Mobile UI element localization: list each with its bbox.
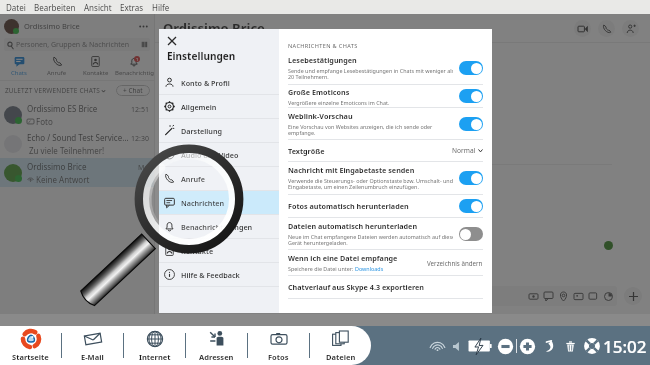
- button[interactable]: Adressen: [186, 326, 247, 365]
- button[interactable]: Close settings: [165, 34, 178, 47]
- button[interactable]: Internet: [124, 326, 185, 365]
- button[interactable]: Ansicht: [80, 1, 116, 14]
- staticText: Lesebestätigungen: [288, 55, 357, 65]
- button[interactable]: More options: [137, 20, 149, 32]
- button[interactable]: Add people: [622, 20, 639, 37]
- button[interactable]: Textgröße: [288, 140, 483, 161]
- button[interactable]: Große Emoticons: [288, 85, 483, 107]
- button[interactable]: Extras: [116, 1, 148, 14]
- staticText: Nachricht mit Eingabetaste senden: [288, 165, 415, 175]
- button[interactable]: Help: [583, 337, 601, 355]
- button[interactable]: Chatverlauf aus Skype 4.3 exportieren: [288, 276, 483, 298]
- button[interactable]: Kontakte: [164, 239, 279, 262]
- staticText: Chats: [11, 69, 27, 77]
- staticText: Zu viele Teilnehmer!: [29, 145, 105, 156]
- staticText: Keine Antwort: [36, 174, 90, 185]
- button[interactable]: Off: [459, 227, 483, 241]
- staticText: Konto & Profil: [181, 78, 230, 88]
- staticText: Adressen: [199, 352, 234, 362]
- button[interactable]: Hilfe: [148, 1, 174, 14]
- staticText: Speichere die Datei unter:: [288, 265, 355, 272]
- staticText: Datei: [6, 2, 26, 13]
- button[interactable]: Startseite: [0, 326, 61, 365]
- staticText: Mo: [138, 163, 149, 173]
- staticText: 12:51: [131, 105, 149, 115]
- button[interactable]: Wenn ich eine Datei empfange: [288, 250, 483, 275]
- button[interactable]: On: [459, 61, 483, 75]
- button[interactable]: On: [459, 117, 483, 131]
- button[interactable]: Zoom out: [497, 338, 514, 355]
- button[interactable]: Datei: [2, 1, 30, 14]
- button[interactable]: Nachricht mit Eingabetaste senden: [288, 162, 483, 194]
- staticText: Allgemein: [181, 102, 217, 112]
- button[interactable]: Ordissimo ES Brice: [4, 100, 149, 129]
- staticText: Darstellung: [181, 126, 222, 136]
- other: Volume: [451, 341, 462, 352]
- staticText: Große Emoticons: [288, 87, 350, 97]
- button[interactable]: Lesebestätigungen: [288, 51, 483, 84]
- button[interactable]: Trash: [563, 339, 578, 354]
- button[interactable]: On: [459, 89, 483, 103]
- staticText: Audio und Video: [181, 150, 239, 160]
- staticText: 1: [136, 57, 139, 62]
- button[interactable]: Benachrichtigungen: [164, 215, 279, 238]
- staticText: Sende und empfange Lesebestätigungen in …: [288, 67, 453, 81]
- button[interactable]: Anrufe: [38, 53, 76, 80]
- staticText: ZULETZT VERWENDETE CHATS: [5, 86, 100, 95]
- staticText: Anrufe: [181, 174, 205, 184]
- staticText: Internet: [139, 352, 171, 362]
- staticText: 12:30: [131, 134, 149, 144]
- button[interactable]: On: [459, 199, 483, 213]
- staticText: Kontakte: [181, 246, 214, 256]
- button[interactable]: 1: [115, 53, 154, 80]
- button[interactable]: Zoom in: [519, 338, 536, 355]
- button[interactable]: + Chat: [116, 85, 150, 96]
- staticText: Fotos automatisch herunterladen: [288, 201, 409, 211]
- staticText: Downloads: [355, 265, 384, 272]
- staticText: Weblink-Vorschau: [288, 111, 353, 121]
- staticText: Startseite: [12, 352, 49, 362]
- button[interactable]: Darstellung: [164, 119, 279, 142]
- staticText: Hilfe: [152, 2, 170, 13]
- button[interactable]: Ordissimo Brice: [4, 14, 149, 38]
- staticText: Hilfe & Feedback: [181, 270, 240, 280]
- staticText: Benachrichtig: [115, 69, 154, 77]
- button[interactable]: Anrufe: [164, 167, 279, 190]
- button[interactable]: Allgemein: [164, 95, 279, 118]
- button[interactable]: Kontakte: [76, 53, 115, 80]
- staticText: Kontakte: [83, 69, 109, 77]
- staticText: Verzeichnis ändern: [427, 259, 483, 267]
- other: Battery: [468, 333, 494, 359]
- button[interactable]: Hilfe & Feedback: [164, 263, 279, 286]
- staticText: Dateien automatisch herunterladen: [288, 221, 418, 231]
- staticText: Vergrößere einzelne Emoticons im Chat.: [288, 99, 390, 106]
- button[interactable]: E-Mail: [62, 326, 123, 365]
- staticText: Anrufe: [47, 69, 67, 77]
- button[interactable]: Nachrichten: [164, 191, 279, 214]
- button[interactable]: Video call: [574, 20, 591, 37]
- button[interactable]: Add: [624, 287, 642, 305]
- button[interactable]: Fotos: [248, 326, 309, 365]
- button[interactable]: On: [459, 171, 483, 185]
- staticText: Ordissimo Brice: [163, 19, 265, 37]
- button[interactable]: Back: [542, 339, 557, 354]
- button[interactable]: Konto & Profil: [164, 71, 279, 94]
- button[interactable]: Dateien automatisch herunterladen: [288, 218, 483, 249]
- button[interactable]: Chats: [0, 53, 38, 80]
- button[interactable]: Weblink-Vorschau: [288, 108, 483, 139]
- button[interactable]: Ordissimo Brice: [4, 158, 149, 187]
- staticText: Chatverlauf aus Skype 4.3 exportieren: [288, 282, 425, 292]
- button[interactable]: Audio call: [598, 20, 615, 37]
- staticText: Bearbeiten: [34, 2, 76, 13]
- button[interactable]: Fotos automatisch herunterladen: [288, 195, 483, 217]
- staticText: Ordissimo Brice: [24, 21, 80, 31]
- staticText: Nachrichten: [181, 198, 225, 208]
- button[interactable]: Dateien: [310, 326, 371, 365]
- staticText: Personen, Gruppen & Nachrichten: [16, 40, 130, 50]
- staticText: + Chat: [123, 86, 143, 95]
- button[interactable]: Bearbeiten: [30, 1, 80, 14]
- button[interactable]: Echo / Sound Test Service „ Or…: [4, 129, 149, 158]
- button[interactable]: Personen, Gruppen & Nachrichten: [4, 38, 150, 51]
- button[interactable]: Audio und Video: [164, 143, 279, 166]
- staticText: Verwende die Steuerungs- oder Optionstas…: [288, 177, 453, 191]
